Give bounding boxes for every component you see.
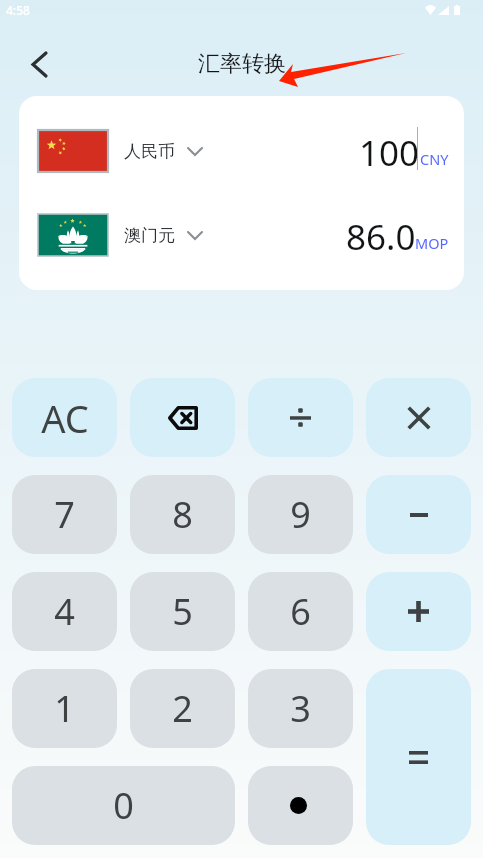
button[interactable]: 7: [12, 475, 117, 554]
button[interactable]: 人民币: [19, 129, 464, 173]
staticText: 7: [54, 490, 75, 539]
button[interactable]: 澳门元: [19, 213, 464, 257]
staticText: 3: [290, 684, 311, 733]
staticText: 2: [172, 684, 193, 733]
staticText: 澳门元: [124, 225, 175, 246]
button[interactable]: 6: [248, 572, 353, 651]
button[interactable]: Backspace: [130, 378, 235, 457]
staticText: 0: [113, 781, 134, 830]
staticText: 1: [54, 684, 75, 733]
staticText: MOP: [415, 233, 449, 253]
staticText: 汇率转换: [198, 50, 286, 78]
button[interactable]: Divide: [248, 378, 353, 457]
button[interactable]: Minus: [366, 475, 471, 554]
button[interactable]: Decimal point: [248, 766, 353, 845]
button[interactable]: 9: [248, 475, 353, 554]
button[interactable]: 0: [12, 766, 235, 845]
staticText: 6: [290, 587, 311, 636]
button[interactable]: Equals: [366, 669, 471, 845]
staticText: 100: [359, 129, 420, 173]
button[interactable]: Plus: [366, 572, 471, 651]
staticText: 4:58: [6, 2, 30, 18]
button[interactable]: 5: [130, 572, 235, 651]
staticText: 8: [172, 490, 193, 539]
button[interactable]: Multiply: [366, 378, 471, 457]
staticText: AC: [41, 392, 89, 444]
button[interactable]: Back: [21, 46, 57, 82]
staticText: 5: [172, 587, 193, 636]
staticText: CNY: [420, 149, 449, 169]
staticText: 9: [290, 490, 311, 539]
button[interactable]: 2: [130, 669, 235, 748]
staticText: 4: [54, 587, 75, 636]
staticText: 86.0: [346, 213, 416, 257]
button[interactable]: AC: [12, 378, 117, 457]
button[interactable]: 3: [248, 669, 353, 748]
staticText: 人民币: [124, 141, 175, 162]
button[interactable]: 1: [12, 669, 117, 748]
button[interactable]: 8: [130, 475, 235, 554]
button[interactable]: 4: [12, 572, 117, 651]
